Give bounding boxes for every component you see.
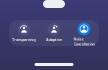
staticText: Transparency	[12, 37, 36, 42]
button[interactable]: Adaptive	[39, 20, 69, 46]
staticText: Adaptive	[46, 37, 62, 42]
button[interactable]: Transparency	[9, 20, 39, 46]
staticText: Noise Cancellation	[73, 36, 94, 47]
button[interactable]: Noise Cancellation	[69, 19, 99, 47]
